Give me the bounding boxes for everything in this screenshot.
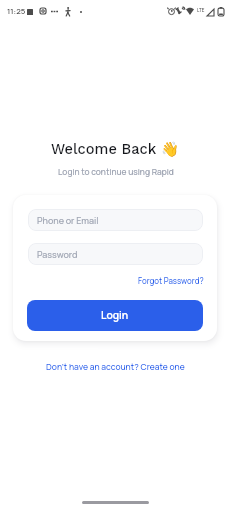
other: Alarm set (168, 7, 175, 15)
other: Instagram notification (40, 8, 46, 14)
other: Battery (218, 7, 224, 16)
button[interactable]: Login (27, 300, 203, 331)
staticText: Login to continue using Rapid (58, 166, 174, 177)
staticText: Password (37, 248, 78, 260)
staticText: Welcome Back (51, 140, 157, 157)
button[interactable]: Password (28, 243, 203, 265)
other: Wi-Fi (186, 8, 194, 15)
staticText: Phone or Email (37, 214, 99, 226)
staticText: Login (101, 308, 129, 322)
staticText: LTE (197, 7, 205, 13)
button[interactable]: Don't have an account? Create one (42, 358, 189, 376)
staticText: 👋 (161, 141, 180, 158)
button[interactable]: Phone or Email (28, 209, 203, 231)
staticText: 11:25 (7, 6, 26, 17)
button[interactable]: Forgot Password? (138, 274, 204, 289)
other: Mobile signal (207, 9, 214, 16)
other: Notification (27, 9, 33, 15)
